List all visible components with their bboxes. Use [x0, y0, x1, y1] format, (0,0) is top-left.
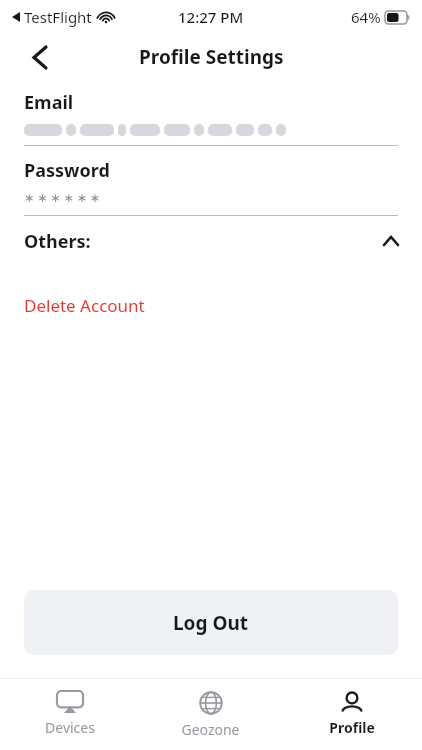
staticText: Log Out — [173, 610, 249, 636]
staticText: Profile — [329, 718, 375, 737]
staticText: Password — [24, 158, 110, 183]
button[interactable]: Geozone — [140, 679, 281, 750]
staticText: 64% — [351, 7, 381, 27]
button[interactable]: Delete Account — [0, 288, 422, 322]
staticText: 12:27 PM — [178, 7, 244, 27]
button[interactable]: Devices — [0, 679, 140, 750]
staticText: Devices — [45, 718, 95, 737]
button[interactable]: Log Out — [24, 590, 398, 655]
staticText: Delete Account — [24, 294, 145, 317]
button[interactable]: Back — [24, 41, 56, 73]
staticText: Geozone — [181, 720, 240, 739]
staticText: Profile Settings — [139, 44, 284, 70]
button[interactable]: Profile — [281, 679, 422, 750]
staticText: Email — [24, 90, 74, 115]
staticText: ∗ ∗ ∗ ∗ ∗ ∗ — [24, 189, 100, 205]
staticText: Others: — [24, 229, 91, 254]
button[interactable]: Others: — [0, 216, 422, 266]
staticText: TestFlight — [24, 7, 92, 27]
